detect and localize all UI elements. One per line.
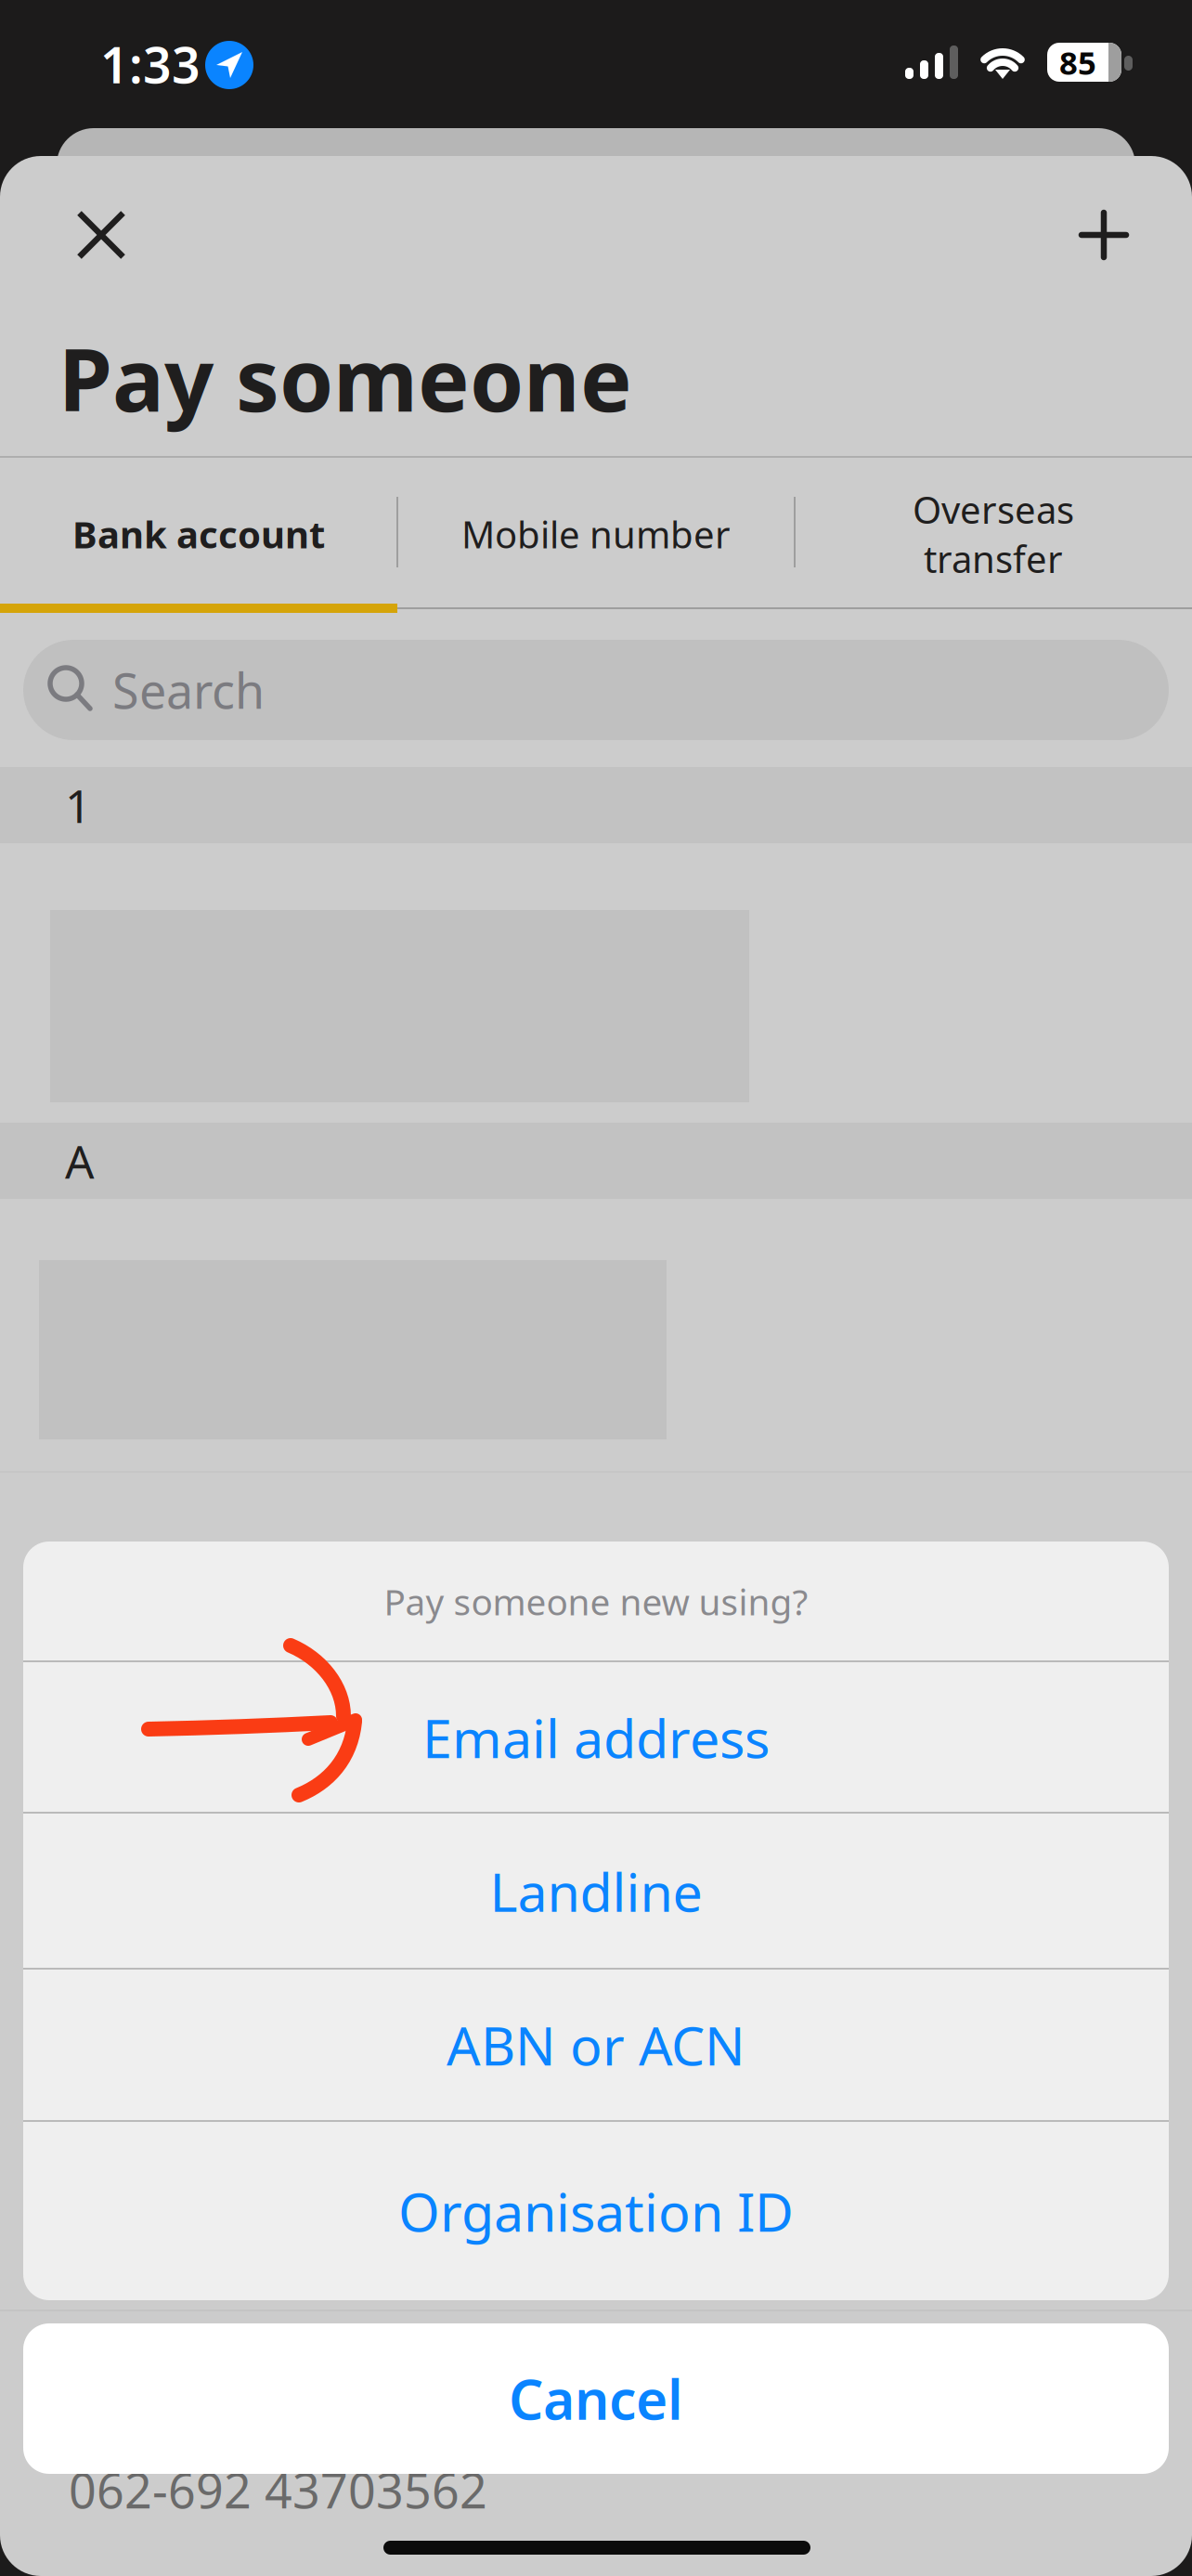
staticText: Cancel: [509, 2362, 683, 2435]
button[interactable]: Payee: [0, 0, 1192, 2576]
staticText: 1:33: [100, 31, 201, 97]
staticText: A: [65, 1130, 95, 1191]
button[interactable]: ABN or ACN: [0, 0, 1192, 2576]
staticText: 1: [65, 775, 91, 835]
button[interactable]: Email address: [0, 0, 1192, 2576]
button[interactable]: Add new payee: [0, 0, 1192, 2576]
button[interactable]: Bank account: [0, 0, 1192, 2576]
staticText: Overseas: [913, 485, 1074, 534]
button[interactable]: Cancel: [0, 0, 1192, 2576]
button[interactable]: Mobile number: [0, 0, 1192, 2576]
button[interactable]: Close: [0, 0, 1192, 2576]
staticText: ABN or ACN: [447, 2009, 745, 2080]
button[interactable]: Overseas: [0, 0, 1192, 2576]
staticText: Organisation ID: [398, 2176, 794, 2246]
button[interactable]: Search: [0, 0, 1192, 2576]
button[interactable]: Payee: [0, 0, 1192, 2576]
staticText: Landline: [490, 1856, 702, 1926]
button[interactable]: Landline: [0, 0, 1192, 2576]
staticText: Search: [112, 658, 265, 722]
staticText: Bank account: [72, 509, 325, 559]
staticText: Email address: [422, 1702, 770, 1773]
button[interactable]: Organisation ID: [0, 0, 1192, 2576]
staticText: Pay someone new using?: [384, 1578, 808, 1625]
staticText: 85: [1059, 41, 1096, 84]
staticText: transfer: [924, 534, 1063, 583]
staticText: Mobile number: [461, 509, 731, 559]
staticText: 062-692 43703562: [69, 2458, 487, 2522]
staticText: Pay someone: [58, 320, 632, 435]
